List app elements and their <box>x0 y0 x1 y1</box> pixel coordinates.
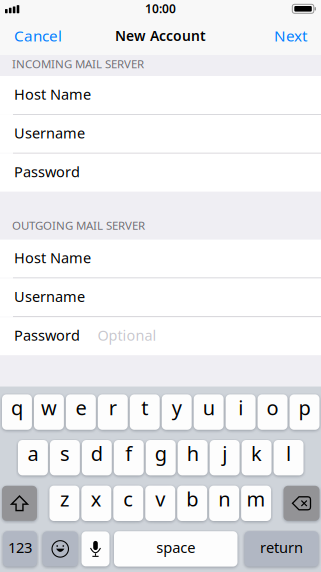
button[interactable]: q <box>2 394 32 430</box>
staticText: w <box>41 394 57 421</box>
staticText: q <box>11 394 23 421</box>
staticText: p <box>298 394 310 421</box>
button[interactable]: Username <box>0 115 321 153</box>
staticText: s <box>60 440 70 466</box>
staticText: return <box>260 538 303 557</box>
button[interactable]: u <box>194 394 224 430</box>
staticText: f <box>125 440 132 466</box>
staticText: Host Name <box>14 84 91 104</box>
button[interactable]: x <box>81 486 111 521</box>
button[interactable]: Password <box>0 154 321 192</box>
staticText: b <box>186 485 198 512</box>
button[interactable]: Host Name <box>0 76 321 114</box>
staticText: e <box>75 394 86 421</box>
staticText: INCOMING MAIL SERVER <box>12 56 144 72</box>
staticText: y <box>172 394 182 421</box>
staticText: Username <box>14 286 85 306</box>
button[interactable]: h <box>178 440 208 475</box>
button[interactable]: m <box>241 486 271 521</box>
button[interactable]: j <box>210 440 240 475</box>
staticText: j <box>222 440 227 466</box>
button[interactable]: o <box>258 394 287 430</box>
staticText: Next <box>274 25 307 46</box>
staticText: Optional <box>97 325 156 345</box>
staticText: z <box>60 485 69 512</box>
button[interactable]: y <box>162 394 192 430</box>
staticText: x <box>91 485 102 512</box>
button[interactable]: Username <box>0 278 321 316</box>
button[interactable]: w <box>34 394 64 430</box>
button[interactable]: g <box>146 440 176 475</box>
button[interactable]: i <box>226 394 256 430</box>
staticText: g <box>155 440 167 466</box>
button[interactable]: 123 <box>3 531 37 567</box>
staticText: 123 <box>8 538 32 557</box>
staticText: i <box>238 394 243 421</box>
staticText: m <box>247 485 266 512</box>
staticText: o <box>267 394 279 421</box>
staticText: k <box>251 440 262 466</box>
staticText: Password <box>14 162 80 181</box>
staticText: r <box>109 394 117 421</box>
staticText: OUTGOING MAIL SERVER <box>12 218 145 233</box>
button[interactable]: Password <box>0 317 321 355</box>
button[interactable]: Shift <box>2 486 37 521</box>
staticText: n <box>218 485 230 512</box>
button[interactable]: return <box>244 531 318 567</box>
staticText: v <box>155 485 165 512</box>
button[interactable]: Next <box>266 21 315 54</box>
staticText: 10:00 <box>145 0 176 16</box>
staticText: New Account <box>115 26 206 45</box>
button[interactable]: space <box>114 531 237 567</box>
staticText: space <box>156 538 195 557</box>
staticText: a <box>27 440 38 466</box>
staticText: Host Name <box>14 248 91 267</box>
button[interactable]: f <box>114 440 144 475</box>
button[interactable]: t <box>130 394 160 430</box>
button[interactable]: Cancel <box>6 21 70 54</box>
button[interactable]: Host Name <box>0 240 321 278</box>
button[interactable]: p <box>289 394 319 430</box>
staticText: Username <box>14 123 85 143</box>
button[interactable]: r <box>98 394 128 430</box>
button[interactable]: l <box>274 440 303 475</box>
staticText: d <box>91 440 103 466</box>
button[interactable]: e <box>66 394 96 430</box>
button[interactable]: c <box>113 486 143 521</box>
staticText: h <box>187 440 199 466</box>
staticText: Password <box>14 325 80 345</box>
button[interactable]: n <box>209 486 239 521</box>
button[interactable]: v <box>145 486 175 521</box>
button[interactable]: Emoji <box>42 531 78 566</box>
button[interactable]: a <box>18 440 48 475</box>
staticText: Cancel <box>14 25 62 46</box>
staticText: t <box>141 394 148 421</box>
button[interactable]: d <box>82 440 112 475</box>
staticText: c <box>123 485 133 512</box>
staticText: u <box>203 394 215 421</box>
button[interactable]: z <box>49 486 79 521</box>
button[interactable]: Delete <box>283 486 319 521</box>
button[interactable]: s <box>50 440 80 475</box>
staticText: l <box>286 440 291 466</box>
button[interactable]: b <box>177 486 207 521</box>
button[interactable]: Dictation <box>81 531 109 566</box>
button[interactable]: k <box>242 440 271 475</box>
